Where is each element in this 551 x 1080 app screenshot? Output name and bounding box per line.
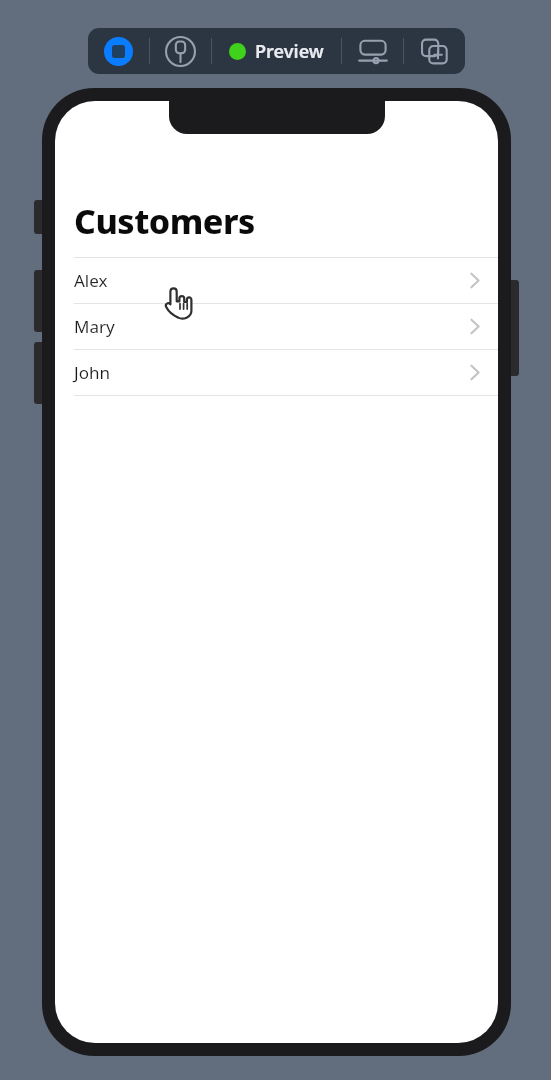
staticText: Mary [74, 315, 115, 338]
button[interactable]: Select device [150, 28, 211, 74]
button[interactable]: Live preview [88, 28, 149, 74]
staticText: Customers [74, 198, 255, 244]
staticText: Alex [74, 269, 108, 292]
button[interactable]: Display options [342, 28, 403, 74]
staticText: Preview [255, 39, 324, 64]
button[interactable]: Add preview [404, 28, 465, 74]
button[interactable]: Alex [55, 258, 498, 303]
button[interactable]: John [55, 350, 498, 395]
staticText: John [74, 361, 110, 384]
button[interactable]: Preview [212, 28, 341, 74]
button[interactable]: Mary [55, 304, 498, 349]
